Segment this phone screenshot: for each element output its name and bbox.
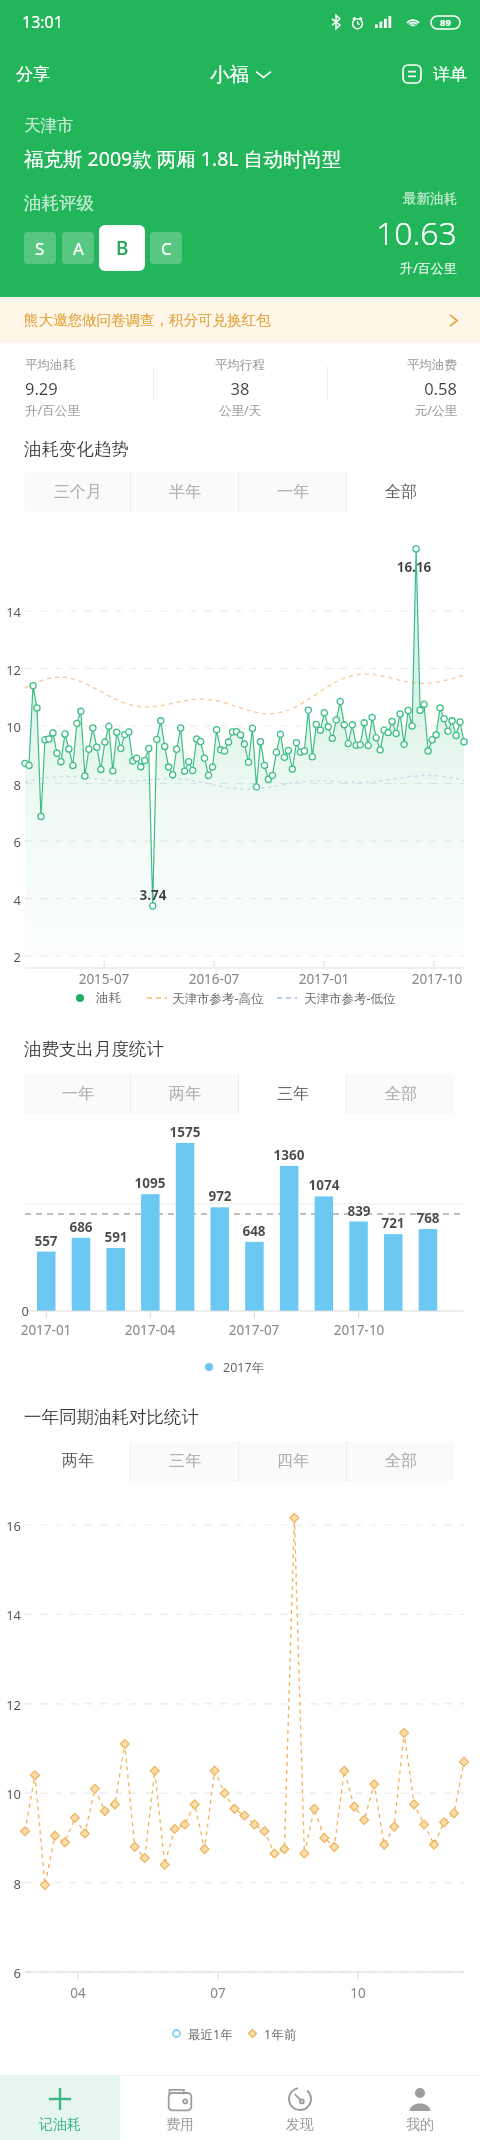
staticText: 两年	[62, 1451, 94, 1471]
staticText: 3.74	[123, 886, 183, 904]
button[interactable]: 三年	[131, 1441, 239, 1481]
staticText: 8	[0, 1875, 21, 1893]
staticText: 元/公里	[307, 402, 457, 419]
staticText: 2017-10	[397, 970, 477, 988]
staticText: 686	[56, 1218, 106, 1236]
staticText: 熊大邀您做问卷调查，积分可兑换红包	[24, 311, 271, 329]
staticText: 分享	[16, 64, 50, 85]
staticText: 4	[0, 891, 21, 909]
staticText: 详单	[433, 64, 467, 85]
button[interactable]: 费用	[120, 2076, 240, 2140]
staticText: 记油耗	[39, 2116, 81, 2134]
staticText: 两年	[169, 1084, 201, 1104]
staticText: 648	[229, 1222, 279, 1240]
staticText: C	[161, 237, 172, 260]
staticText: 768	[403, 1209, 453, 1227]
button[interactable]: 详单	[391, 50, 480, 98]
staticText: 全部	[385, 1451, 417, 1471]
staticText: 平均行程	[165, 357, 315, 373]
button[interactable]: 记油耗	[0, 2076, 120, 2140]
staticText: 2017-07	[214, 1321, 294, 1339]
staticText: 839	[334, 1202, 384, 1220]
staticText: 6	[0, 1964, 21, 1982]
button[interactable]: A	[62, 232, 94, 264]
staticText: 天津市参考-低位	[304, 990, 396, 1007]
staticText: 我的	[406, 2116, 434, 2134]
button[interactable]: 我的	[360, 2076, 480, 2140]
staticText: 平均油费	[307, 357, 457, 373]
button[interactable]: 发现	[240, 2076, 360, 2140]
staticText: 油耗变化趋势	[24, 438, 129, 460]
staticText: 一年	[62, 1084, 94, 1104]
staticText: 2015-07	[64, 970, 144, 988]
button[interactable]: 小福	[210, 50, 279, 98]
staticText: 小福	[210, 62, 249, 87]
staticText: 6	[0, 833, 21, 851]
button[interactable]: 两年	[131, 1074, 239, 1114]
staticText: 发现	[286, 2116, 314, 2134]
staticText: 1074	[299, 1176, 349, 1194]
staticText: 2017-01	[284, 970, 364, 988]
staticText: 一年	[277, 482, 309, 502]
staticText: 公里/天	[165, 402, 315, 419]
button[interactable]: 全部	[347, 1441, 455, 1481]
staticText: 油费支出月度统计	[24, 1038, 164, 1060]
staticText: 16	[0, 1517, 21, 1535]
button[interactable]: B	[99, 225, 145, 271]
staticText: 升/百公里	[400, 259, 457, 277]
staticText: 972	[195, 1187, 245, 1205]
staticText: 全部	[385, 482, 417, 502]
staticText: 10	[338, 1984, 378, 2002]
staticText: 14	[0, 603, 21, 621]
staticText: 14	[0, 1606, 21, 1624]
staticText: A	[73, 237, 84, 260]
button[interactable]: 四年	[239, 1441, 347, 1481]
button[interactable]: 一年	[24, 1074, 131, 1114]
button[interactable]: 一年	[239, 472, 347, 512]
staticText: 天津市	[24, 115, 74, 136]
staticText: 10	[0, 1785, 21, 1803]
button[interactable]: 三个月	[24, 472, 131, 512]
staticText: 全部	[385, 1084, 417, 1104]
button[interactable]: 半年	[131, 472, 239, 512]
staticText: 半年	[169, 482, 201, 502]
staticText: 四年	[277, 1451, 309, 1471]
button[interactable]: S	[24, 232, 56, 264]
button[interactable]: 三年	[239, 1074, 347, 1114]
staticText: 1095	[125, 1174, 175, 1192]
staticText: 天津市参考-高位	[172, 990, 264, 1007]
button[interactable]: C	[150, 232, 182, 264]
staticText: 12	[0, 661, 21, 679]
staticText: 557	[21, 1232, 71, 1250]
staticText: 38	[165, 377, 315, 399]
button[interactable]: 全部	[347, 1074, 455, 1114]
staticText: 12	[0, 1696, 21, 1714]
staticText: 平均油耗	[25, 357, 175, 373]
button[interactable]: 熊大邀您做问卷调查，积分可兑换红包	[0, 297, 480, 343]
staticText: B	[116, 235, 129, 261]
button[interactable]: 全部	[347, 472, 455, 512]
staticText: 07	[198, 1984, 238, 2002]
staticText: 2017-10	[319, 1321, 399, 1339]
button[interactable]: 分享	[0, 50, 66, 98]
staticText: 10	[0, 718, 21, 736]
staticText: 三个月	[54, 482, 102, 502]
staticText: 三年	[277, 1084, 309, 1104]
staticText: 721	[368, 1214, 418, 1232]
staticText: 2016-07	[174, 970, 254, 988]
staticText: 9.29	[25, 377, 175, 399]
staticText: 89	[440, 16, 451, 29]
staticText: 0	[7, 1302, 29, 1320]
staticText: 1年前	[264, 2026, 297, 2043]
staticText: 1360	[264, 1146, 314, 1164]
staticText: 油耗	[96, 990, 121, 1006]
staticText: 费用	[166, 2116, 194, 2134]
staticText: 最新油耗	[403, 190, 457, 207]
staticText: 三年	[169, 1451, 201, 1471]
staticText: S	[35, 237, 45, 260]
staticText: 0.58	[307, 377, 457, 399]
button[interactable]: 两年	[24, 1441, 131, 1481]
staticText: 8	[0, 776, 21, 794]
staticText: 升/百公里	[25, 402, 175, 419]
staticText: 2017-01	[6, 1321, 86, 1339]
